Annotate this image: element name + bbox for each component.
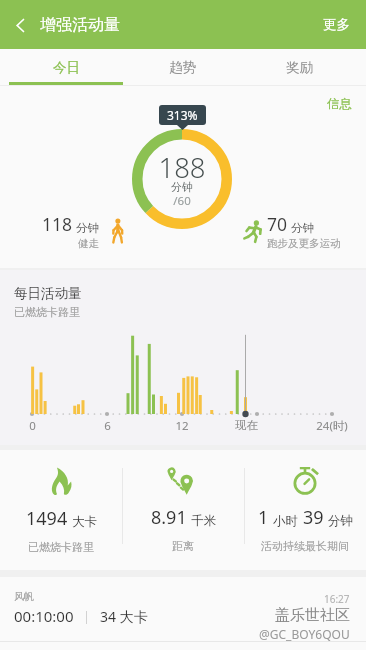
button[interactable]: Back: [0, 5, 40, 45]
staticText: 分钟: [291, 221, 314, 235]
staticText: 风帆: [14, 590, 34, 603]
staticText: 小时: [273, 513, 298, 529]
button[interactable]: 8.91: [122, 450, 244, 570]
staticText: 已燃烧卡路里: [14, 305, 80, 319]
staticText: 16:27: [324, 592, 350, 606]
staticText: 今日: [53, 59, 80, 76]
staticText: 更多: [323, 16, 350, 33]
staticText: 70: [267, 212, 288, 236]
staticText: 1: [258, 505, 269, 530]
staticText: 跑步及更多运动: [267, 237, 341, 250]
staticText: 大卡: [72, 514, 97, 530]
staticText: @GC_BOY6QOU: [259, 626, 350, 642]
button[interactable]: 奖励: [241, 49, 358, 86]
staticText: 现在: [235, 418, 258, 432]
staticText: 0: [29, 418, 36, 434]
staticText: 34 大卡: [100, 607, 148, 626]
button[interactable]: 118: [42, 212, 127, 250]
staticText: 每日活动量: [14, 285, 82, 302]
staticText: 12: [175, 418, 189, 434]
staticText: 188: [158, 149, 206, 186]
staticText: 盖乐世社区: [275, 606, 350, 625]
staticText: |: [74, 608, 100, 624]
staticText: 00:10:00: [14, 606, 74, 626]
button[interactable]: 风帆: [14, 590, 148, 626]
staticText: 分钟: [171, 180, 193, 194]
staticText: 已燃烧卡路里: [28, 540, 94, 554]
staticText: 健走: [78, 237, 99, 250]
staticText: 千米: [191, 513, 216, 529]
staticText: 39: [303, 505, 324, 530]
button[interactable]: 今日: [8, 49, 124, 86]
staticText: 6: [104, 418, 111, 434]
staticText: 313%: [167, 107, 198, 123]
staticText: 信息: [327, 96, 352, 112]
staticText: 24(时): [316, 418, 348, 434]
button[interactable]: 70: [242, 212, 341, 250]
staticText: 分钟: [328, 513, 353, 529]
button[interactable]: 信息: [327, 86, 366, 112]
button[interactable]: 更多: [323, 16, 350, 33]
button[interactable]: 1: [244, 450, 366, 570]
button[interactable]: 趋势: [124, 49, 241, 86]
staticText: 奖励: [286, 59, 313, 76]
staticText: 增强活动量: [40, 15, 120, 35]
staticText: /60: [173, 193, 191, 209]
staticText: 118: [42, 212, 73, 236]
staticText: 1494: [26, 506, 68, 531]
staticText: 8.91: [151, 505, 187, 530]
staticText: 趋势: [169, 59, 196, 76]
button[interactable]: 1494: [0, 450, 122, 570]
staticText: 分钟: [76, 221, 99, 235]
staticText: 活动持续最长期间: [261, 539, 349, 553]
staticText: 距离: [172, 539, 194, 553]
